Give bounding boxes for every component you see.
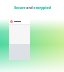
- button[interactable]: [9, 18, 30, 24]
- staticText: Secure and encrypted: [14, 5, 51, 10]
